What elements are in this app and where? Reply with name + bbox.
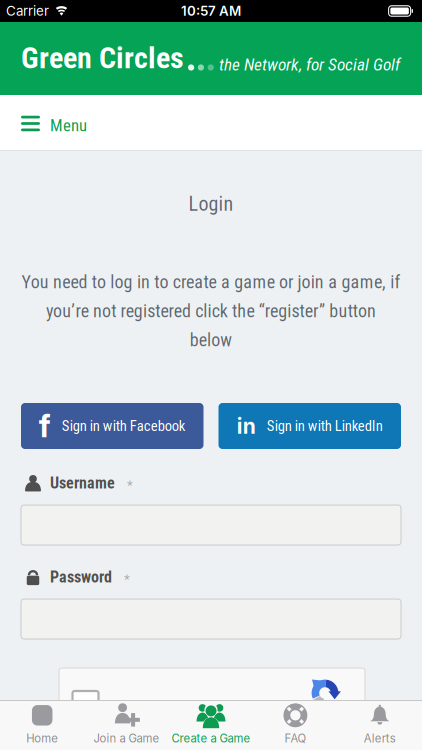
- button[interactable]: Home: [0, 700, 84, 750]
- button[interactable]: Alerts: [338, 700, 422, 750]
- button[interactable]: I'm not a robot: [72, 691, 98, 717]
- staticText: *: [124, 571, 130, 587]
- staticText: below: [190, 329, 232, 351]
- staticText: Username: [50, 474, 115, 492]
- button[interactable]: Create a Game: [169, 700, 253, 750]
- staticText: Login: [188, 192, 233, 216]
- staticText: Join a Game: [94, 732, 160, 745]
- button[interactable]: FAQ: [253, 700, 338, 750]
- staticText: Carrier: [6, 3, 49, 19]
- staticText: Green Circles: [21, 40, 184, 76]
- staticText: Create a Game: [171, 732, 250, 745]
- staticText: the Network, for Social Golf: [219, 54, 400, 75]
- staticText: Sign in with Facebook: [62, 417, 186, 435]
- button[interactable]: Join a Game: [84, 700, 169, 750]
- staticText: You need to log in to create a game or j…: [21, 271, 400, 293]
- staticText: 10:57 AM: [181, 3, 241, 19]
- staticText: you’re not registered click the “registe…: [46, 300, 376, 322]
- staticText: Alerts: [364, 732, 396, 745]
- button[interactable]: Menu: [21, 114, 87, 133]
- staticText: Password: [50, 568, 112, 586]
- staticText: f: [39, 408, 51, 444]
- staticText: *: [127, 477, 133, 493]
- staticText: Sign in with LinkedIn: [267, 417, 383, 435]
- button[interactable]: Username: [21, 505, 401, 545]
- button[interactable]: f: [21, 403, 203, 449]
- staticText: FAQ: [284, 732, 306, 745]
- staticText: Home: [26, 732, 58, 745]
- staticText: Menu: [50, 116, 87, 135]
- button[interactable]: in: [218, 403, 401, 449]
- button[interactable]: Password: [21, 599, 401, 639]
- staticText: in: [237, 414, 256, 438]
